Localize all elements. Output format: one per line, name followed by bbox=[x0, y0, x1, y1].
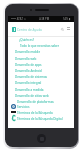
staticText: ••••• AT&T ≈ bbox=[11, 17, 26, 21]
button[interactable]: Desarrollo web bbox=[15, 57, 37, 61]
staticText: Centro de Ayuda bbox=[17, 28, 42, 32]
button[interactable]: Llamar bbox=[12, 115, 16, 121]
button[interactable]: Términos de la Búsqueda bbox=[17, 111, 53, 115]
button[interactable]: Horarios bbox=[11, 104, 16, 109]
button[interactable]: Buscar bbox=[60, 27, 64, 31]
staticText: Términos de la Búsqueda Digital bbox=[17, 117, 63, 121]
button[interactable]: Desarrollo de sistemas bbox=[15, 75, 48, 79]
staticText: 4:38 PM bbox=[39, 17, 50, 21]
button[interactable]: Desarrollo integral bbox=[15, 81, 42, 85]
staticText: Desarrollo de plataformas bbox=[17, 100, 54, 104]
button[interactable]: Términos de la Búsqueda Digital bbox=[17, 117, 63, 121]
button[interactable]: Desarrollo de plataformas bbox=[17, 100, 54, 104]
staticText: Desarrollo web bbox=[15, 57, 37, 61]
button[interactable]: Desarrollo de sitios web bbox=[15, 94, 49, 98]
button[interactable]: Desarrollo mobile bbox=[15, 50, 41, 54]
staticText: Términos de la Búsqueda bbox=[17, 111, 53, 115]
button[interactable]: Desarrollo Android bbox=[15, 69, 42, 73]
staticText: ¿Quién es? bbox=[19, 38, 35, 42]
staticText: Desarrollo integral bbox=[15, 81, 42, 85]
staticText: Desarrollo de sitios web bbox=[15, 94, 49, 98]
button[interactable]: Menú bbox=[66, 27, 70, 31]
staticText: Desarrollo de sistemas bbox=[15, 75, 48, 79]
staticText: Desarrollo mobile bbox=[15, 50, 41, 54]
staticText: Todo lo que necesitas saber bbox=[20, 44, 60, 48]
button[interactable]: Servicios bbox=[17, 105, 30, 109]
button[interactable]: Home bbox=[37, 134, 46, 143]
button[interactable]: Desarrollo de apps bbox=[15, 63, 42, 67]
button[interactable]: Todo lo que necesitas saber bbox=[20, 44, 60, 48]
button[interactable]: Desarrollo a medida bbox=[15, 88, 44, 92]
staticText: Desarrollo Android bbox=[15, 69, 42, 73]
staticText: 54% ▮ bbox=[63, 17, 71, 21]
staticText: Desarrollo a medida bbox=[15, 88, 44, 92]
button[interactable]: ¿Quién es? bbox=[19, 38, 35, 42]
staticText: Servicios bbox=[17, 105, 30, 109]
staticText: Desarrollo de apps bbox=[15, 63, 42, 67]
button[interactable]: Logo bbox=[12, 27, 16, 32]
